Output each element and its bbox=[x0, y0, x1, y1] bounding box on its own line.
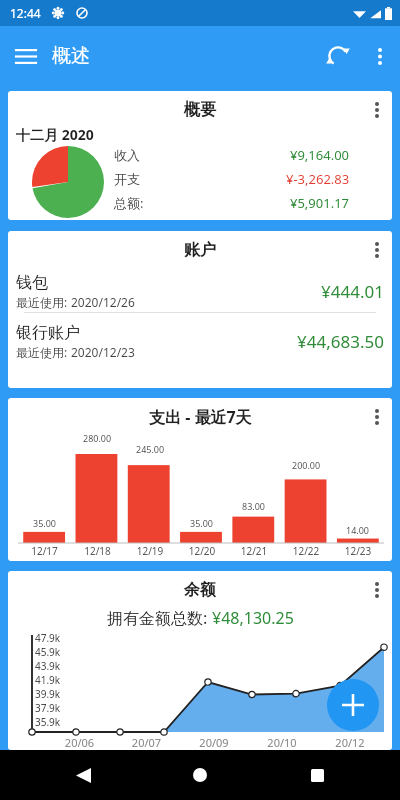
staticText: 银行账户 bbox=[16, 323, 80, 343]
staticText: 14.00 bbox=[346, 524, 370, 536]
staticText: 账户 bbox=[184, 240, 216, 260]
staticText: 12/21 bbox=[228, 544, 280, 558]
button[interactable]: More options bbox=[362, 575, 392, 605]
staticText: 最近使用: bbox=[16, 344, 71, 360]
staticText: 2020/12/23 bbox=[71, 344, 135, 360]
staticText: 概述 bbox=[52, 44, 90, 68]
staticText: 收入 bbox=[114, 147, 140, 163]
staticText: 余额 bbox=[184, 580, 216, 600]
staticText: 开支 bbox=[114, 171, 140, 187]
staticText: 37.9k bbox=[35, 701, 61, 715]
staticText: ¥48,130.25 bbox=[212, 607, 294, 629]
staticText: 12:44 bbox=[10, 5, 41, 21]
button[interactable]: 钱包 bbox=[8, 271, 392, 312]
staticText: 245.00 bbox=[136, 443, 165, 455]
staticText: 钱包 bbox=[16, 273, 48, 293]
staticText: 35.00 bbox=[33, 517, 57, 529]
staticText: ¥444.01 bbox=[321, 280, 384, 303]
staticText: 45.9k bbox=[35, 645, 61, 659]
staticText: 39.9k bbox=[35, 687, 61, 701]
staticText: 20/07 bbox=[113, 735, 180, 750]
staticText: ¥5,901.17 bbox=[290, 194, 350, 212]
staticText: 概要 bbox=[184, 100, 216, 120]
button[interactable]: Back bbox=[66, 758, 100, 792]
staticText: 20/09 bbox=[180, 735, 248, 750]
staticText: 47.9k bbox=[35, 631, 61, 645]
staticText: 12/23 bbox=[332, 544, 384, 558]
button[interactable]: Home bbox=[183, 758, 217, 792]
staticText: 20/10 bbox=[248, 735, 316, 750]
button[interactable]: Recent apps bbox=[300, 758, 334, 792]
staticText: ¥9,164.00 bbox=[290, 146, 350, 164]
button[interactable]: More options bbox=[362, 235, 392, 265]
staticText: 12/19 bbox=[124, 544, 176, 558]
staticText: 2020/12/26 bbox=[71, 294, 135, 310]
button[interactable]: 支出 - 最近7天 bbox=[8, 398, 392, 561]
button[interactable]: More options bbox=[362, 402, 392, 432]
staticText: 43.9k bbox=[35, 659, 61, 673]
button[interactable]: More options bbox=[360, 36, 400, 76]
staticText: 83.00 bbox=[242, 500, 266, 512]
staticText: 20/06 bbox=[46, 735, 113, 750]
staticText: 280.00 bbox=[83, 432, 112, 443]
staticText: 41.9k bbox=[35, 673, 61, 687]
staticText: 35.9k bbox=[35, 715, 61, 727]
staticText: 支出 - 最近7天 bbox=[149, 406, 252, 428]
staticText: 35.00 bbox=[190, 517, 214, 529]
staticText: 十二月 2020 bbox=[16, 125, 94, 144]
button[interactable]: More options bbox=[362, 95, 392, 125]
staticText: 12/22 bbox=[280, 544, 332, 558]
staticText: 拥有金额总数: bbox=[107, 607, 212, 629]
staticText: ¥-3,262.83 bbox=[286, 170, 350, 188]
staticText: 12/20 bbox=[176, 544, 228, 558]
button[interactable]: 概要 bbox=[8, 91, 392, 220]
button[interactable]: 余额 bbox=[8, 571, 392, 750]
staticText: 12/18 bbox=[71, 544, 124, 558]
staticText: 总额: bbox=[114, 194, 144, 212]
button[interactable]: Add transaction bbox=[327, 679, 379, 731]
staticText: 200.00 bbox=[292, 459, 321, 471]
button[interactable]: Sync bbox=[316, 34, 360, 78]
staticText: 12/17 bbox=[18, 544, 71, 558]
button[interactable]: 银行账户 bbox=[8, 321, 392, 362]
staticText: 最近使用: bbox=[16, 294, 71, 310]
button[interactable]: Menu bbox=[6, 36, 46, 76]
staticText: 20/12 bbox=[316, 735, 384, 750]
staticText: ¥44,683.50 bbox=[297, 330, 384, 353]
